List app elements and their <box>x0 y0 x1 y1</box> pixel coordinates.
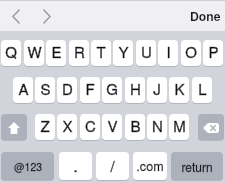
staticText: Z <box>40 115 50 136</box>
staticText: / <box>110 155 115 176</box>
button[interactable]: O <box>181 40 201 66</box>
button[interactable]: Next field <box>35 4 59 28</box>
button[interactable]: Done <box>187 3 224 28</box>
staticText: return <box>181 158 213 175</box>
button[interactable]: . <box>59 152 92 180</box>
staticText: .com <box>136 157 164 175</box>
staticText: P <box>208 41 219 62</box>
button[interactable]: T <box>91 40 111 66</box>
staticText: Done <box>190 7 221 24</box>
staticText: O <box>185 41 197 62</box>
staticText: H <box>130 78 141 99</box>
button[interactable]: Z <box>35 114 55 140</box>
staticText: V <box>107 115 118 136</box>
staticText: L <box>198 78 207 99</box>
staticText: I <box>166 41 171 62</box>
button[interactable]: E <box>46 40 66 66</box>
staticText: F <box>85 78 95 99</box>
staticText: G <box>106 78 118 99</box>
staticText: J <box>153 78 161 99</box>
staticText: H <box>130 78 141 99</box>
staticText: D <box>62 78 73 99</box>
button[interactable]: R <box>69 40 89 66</box>
button[interactable]: P <box>203 40 223 66</box>
staticText: U <box>141 41 152 62</box>
staticText: Y <box>118 41 129 62</box>
button[interactable]: Q <box>1 40 21 66</box>
staticText: T <box>96 41 106 62</box>
button[interactable]: Shift <box>1 114 27 140</box>
button[interactable]: X <box>57 114 77 140</box>
button[interactable]: U <box>136 40 156 66</box>
staticText: U <box>141 41 152 62</box>
staticText: .com <box>136 157 164 175</box>
staticText: / <box>110 155 115 176</box>
button[interactable]: A <box>13 77 33 103</box>
staticText: Z <box>40 115 50 136</box>
staticText: S <box>40 78 51 99</box>
staticText: return <box>181 158 213 175</box>
button[interactable]: Y <box>113 40 133 66</box>
staticText: T <box>96 41 106 62</box>
button[interactable]: .com <box>133 152 167 180</box>
staticText: C <box>85 115 96 136</box>
staticText: M <box>173 115 186 136</box>
button[interactable]: M <box>169 114 189 140</box>
staticText: C <box>85 115 96 136</box>
staticText: K <box>174 78 185 99</box>
button[interactable]: V <box>102 114 122 140</box>
button[interactable]: N <box>147 114 167 140</box>
staticText: R <box>74 41 85 62</box>
staticText: @123 <box>14 159 42 174</box>
button[interactable]: J <box>147 77 167 103</box>
button[interactable]: Delete <box>198 114 224 140</box>
staticText: O <box>185 41 197 62</box>
button[interactable]: S <box>35 77 55 103</box>
staticText: B <box>130 115 141 136</box>
staticText: R <box>74 41 85 62</box>
staticText: I <box>166 41 171 62</box>
button[interactable]: return <box>171 152 223 180</box>
button[interactable]: / <box>96 152 129 180</box>
staticText: V <box>107 115 118 136</box>
staticText: E <box>51 41 62 62</box>
staticText: L <box>198 78 207 99</box>
button[interactable]: B <box>125 114 145 140</box>
staticText: X <box>62 115 73 136</box>
staticText: @123 <box>14 159 42 174</box>
staticText: E <box>51 41 62 62</box>
button[interactable]: D <box>57 77 77 103</box>
staticText: P <box>208 41 219 62</box>
staticText: Q <box>5 41 17 62</box>
staticText: K <box>174 78 185 99</box>
button[interactable]: @123 <box>1 152 54 180</box>
button[interactable]: K <box>169 77 189 103</box>
staticText: G <box>106 78 118 99</box>
button[interactable]: I <box>158 40 178 66</box>
staticText: W <box>27 41 42 62</box>
staticText: Y <box>118 41 129 62</box>
button[interactable]: H <box>125 77 145 103</box>
staticText: Q <box>5 41 17 62</box>
staticText: . <box>73 155 78 176</box>
staticText: F <box>85 78 95 99</box>
button[interactable]: C <box>80 114 100 140</box>
staticText: A <box>18 78 29 99</box>
button[interactable]: F <box>80 77 100 103</box>
staticText: M <box>173 115 186 136</box>
staticText: W <box>27 41 42 62</box>
staticText: A <box>18 78 29 99</box>
button[interactable]: Previous field <box>4 4 28 28</box>
staticText: J <box>153 78 161 99</box>
button[interactable]: L <box>192 77 212 103</box>
staticText: B <box>130 115 141 136</box>
button[interactable]: W <box>24 40 44 66</box>
staticText: D <box>62 78 73 99</box>
button[interactable]: G <box>102 77 122 103</box>
staticText: N <box>152 115 163 136</box>
staticText: X <box>62 115 73 136</box>
staticText: S <box>40 78 51 99</box>
staticText: . <box>73 155 78 176</box>
staticText: N <box>152 115 163 136</box>
